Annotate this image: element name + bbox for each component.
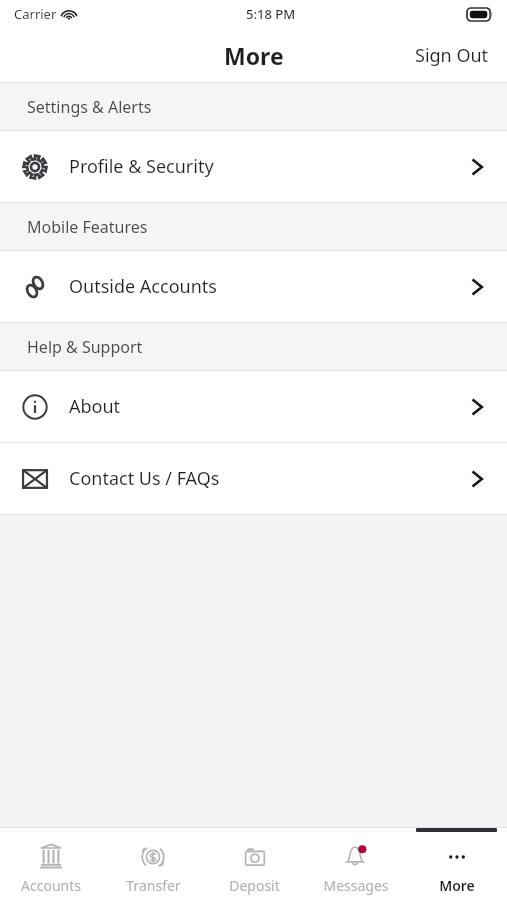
staticText: Accounts: [21, 876, 81, 895]
staticText: Messages: [323, 876, 389, 895]
button[interactable]: Contact Us / FAQs: [0, 443, 507, 514]
staticText: Carrier: [14, 5, 57, 23]
button[interactable]: Messages: [305, 828, 406, 900]
staticText: About: [69, 394, 121, 419]
staticText: More: [224, 40, 284, 71]
staticText: Profile & Security: [69, 154, 214, 179]
staticText: Deposit: [229, 876, 280, 895]
staticText: Transfer: [126, 876, 181, 895]
staticText: Settings & Alerts: [27, 96, 152, 118]
staticText: Contact Us / FAQs: [69, 466, 220, 491]
staticText: Mobile Features: [27, 216, 148, 238]
button[interactable]: Transfer: [102, 828, 204, 900]
button[interactable]: Deposit: [204, 828, 305, 900]
button[interactable]: Profile & Security: [0, 131, 507, 202]
button[interactable]: Outside Accounts: [0, 251, 507, 322]
staticText: 5:18 PM: [246, 5, 296, 23]
staticText: Help & Support: [27, 336, 143, 358]
staticText: More: [439, 876, 475, 895]
button[interactable]: About: [0, 371, 507, 442]
button[interactable]: Accounts: [0, 828, 102, 900]
button[interactable]: Sign Out: [397, 33, 507, 78]
staticText: Outside Accounts: [69, 274, 217, 299]
staticText: Sign Out: [415, 43, 489, 68]
button[interactable]: More: [406, 828, 507, 900]
